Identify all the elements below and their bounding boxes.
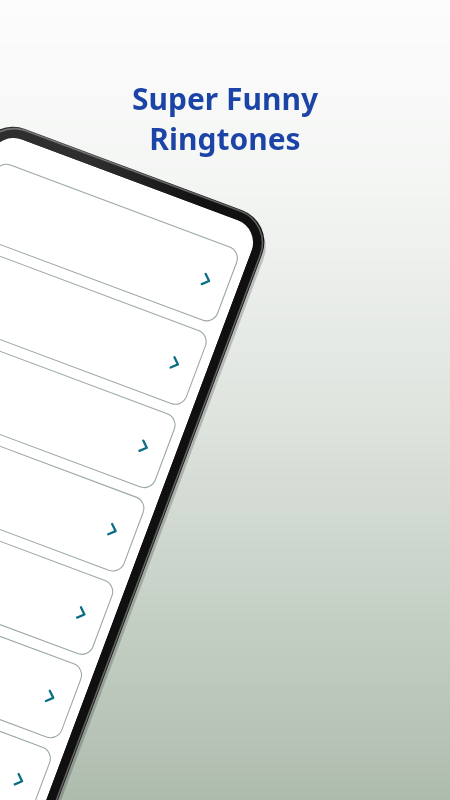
button[interactable]: Ringtone list preview bbox=[0, 200, 200, 760]
button[interactable]: Super Funny Ringtones bbox=[0, 78, 450, 159]
